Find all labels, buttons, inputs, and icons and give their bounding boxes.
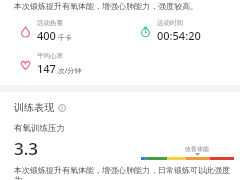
staticText: 千卡 — [56, 33, 72, 43]
other: 说明 — [58, 104, 66, 112]
button[interactable]: 平均心率 — [0, 51, 120, 77]
other: 活动热量 — [19, 25, 32, 38]
other: 运动时间 — [139, 25, 152, 38]
staticText: 训练表现 — [14, 101, 54, 114]
staticText: 147 — [37, 61, 56, 76]
staticText: 00:54:20 — [157, 28, 201, 43]
other: 平均心率 — [19, 58, 32, 71]
staticText: 次/分钟 — [56, 66, 82, 76]
staticText: 400 — [37, 28, 56, 43]
staticText: 3.3 — [14, 137, 39, 160]
staticText: 有氧训练压力 — [14, 123, 65, 134]
button[interactable]: 训练表现 — [0, 100, 80, 115]
staticText: 运动时间 — [157, 19, 183, 27]
button[interactable]: 运动时间 — [120, 18, 240, 44]
staticText: 本次锻炼提升有氧体能，增强心肺能力，日常锻炼可以此强度为 — [14, 165, 236, 180]
staticText: 活动热量 — [37, 19, 63, 27]
button[interactable]: 活动热量 — [0, 18, 120, 44]
staticText: 本次锻炼提升有氧体能，增强心肺能力，强度较高。 — [14, 1, 232, 11]
staticText: 平均心率 — [37, 52, 63, 60]
staticText: 改善体能 — [185, 145, 209, 153]
